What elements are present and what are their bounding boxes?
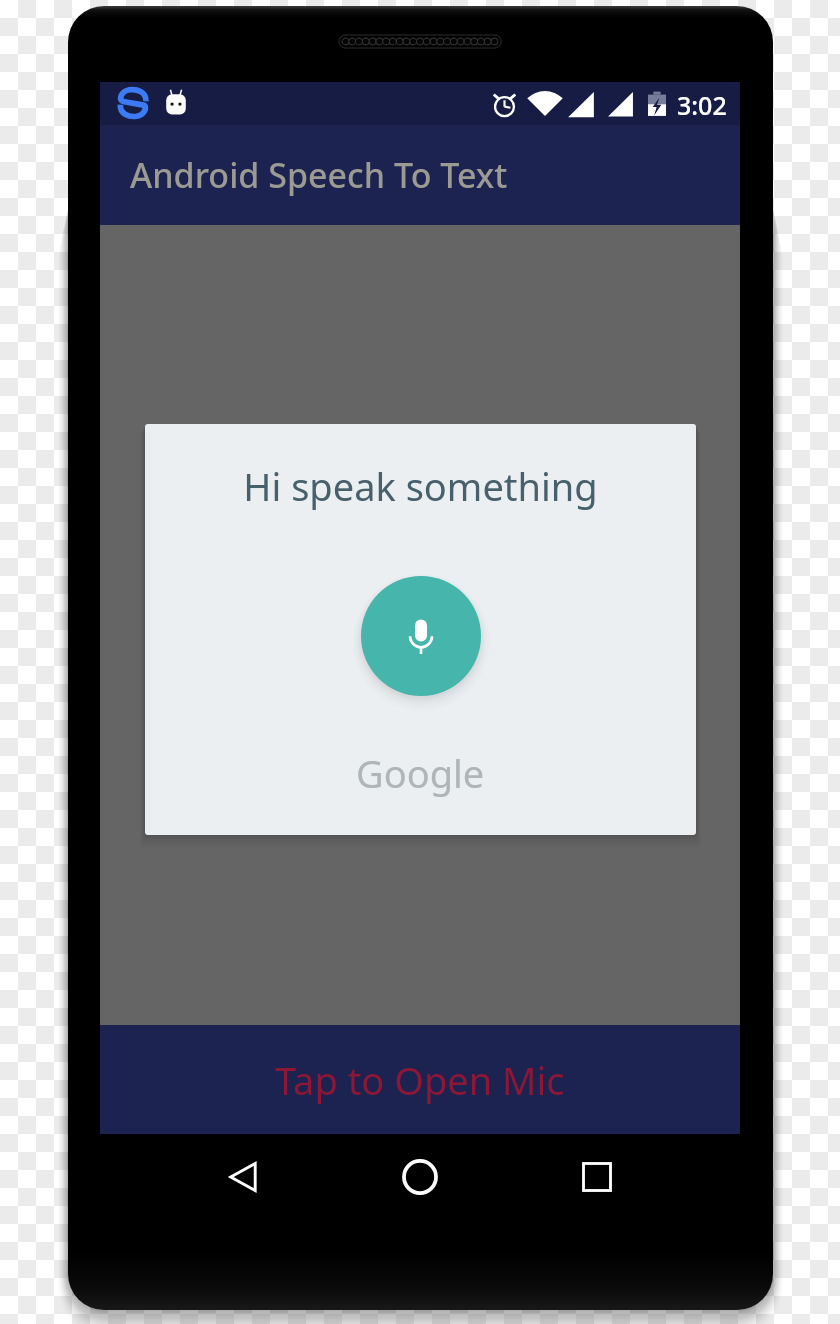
button[interactable]: Tap to Open Mic: [100, 1025, 740, 1134]
button[interactable]: Start voice input: [361, 576, 481, 696]
button[interactable]: Back: [224, 1156, 266, 1198]
staticText: 3:02: [677, 88, 727, 122]
staticText: Hi speak something: [243, 460, 598, 512]
staticText: Tap to Open Mic: [275, 1054, 565, 1106]
staticText: Android Speech To Text: [130, 152, 508, 198]
staticText: Google: [356, 747, 485, 799]
button[interactable]: Home: [399, 1156, 441, 1198]
button[interactable]: Recent apps: [576, 1156, 618, 1198]
